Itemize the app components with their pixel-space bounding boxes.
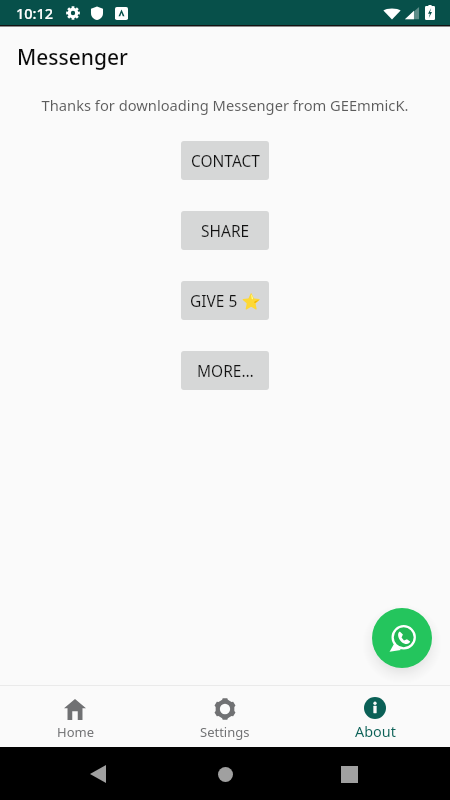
button[interactable]: GIVE 5 ⭐ [181,281,269,320]
button[interactable]: CONTACT [181,141,269,180]
staticText: About [355,722,396,742]
button[interactable]: Home [0,692,150,741]
button[interactable]: MORE… [181,351,269,390]
button[interactable]: About [300,691,450,742]
staticText: GIVE 5 ⭐ [190,290,261,311]
button[interactable]: Back [81,757,115,791]
staticText: SHARE [201,220,250,241]
staticText: Settings [200,723,250,741]
staticText: Messenger [17,43,128,72]
staticText: MORE… [197,360,254,381]
button[interactable]: Settings [150,692,300,741]
staticText: CONTACT [191,150,260,171]
staticText: 10:12 [16,3,54,23]
button[interactable]: Open WhatsApp chat [372,608,432,668]
button[interactable]: Recent apps [332,757,366,791]
button[interactable]: SHARE [181,211,269,250]
button[interactable]: Home [208,757,242,791]
staticText: Home [57,723,94,741]
staticText: Thanks for downloading Messenger from GE… [0,95,450,115]
